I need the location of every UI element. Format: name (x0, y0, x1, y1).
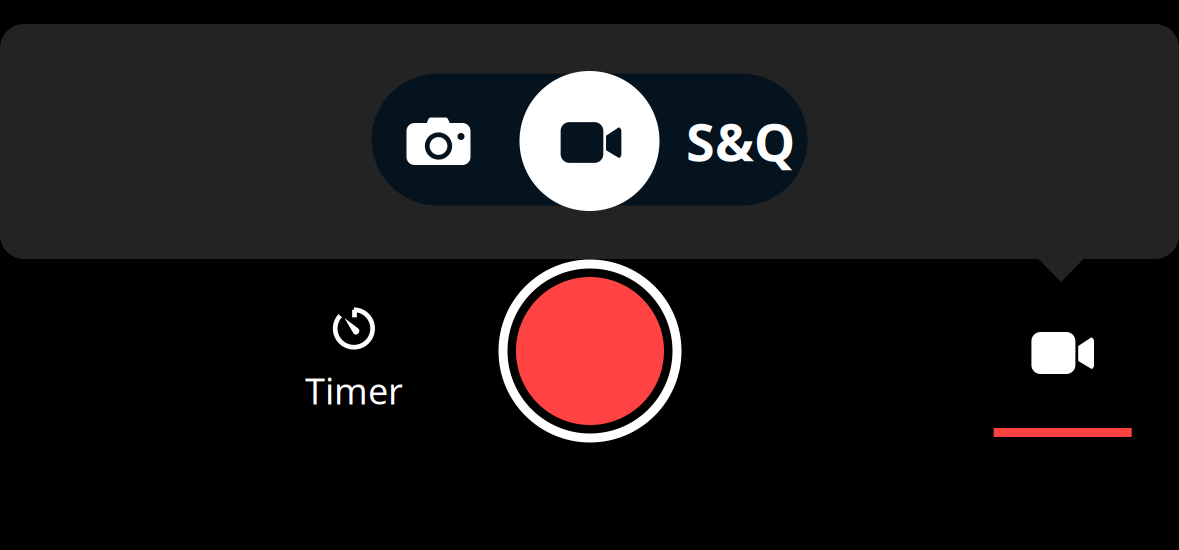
button[interactable]: Video mode (519, 71, 659, 211)
button[interactable]: S&Q (670, 75, 810, 207)
button[interactable]: Photo mode (368, 75, 508, 207)
button[interactable]: Video mode (973, 328, 1153, 454)
button[interactable]: Record (498, 259, 681, 442)
staticText: S&Q (686, 106, 795, 176)
staticText: Timer (305, 367, 403, 414)
button[interactable]: Timer (264, 303, 444, 419)
